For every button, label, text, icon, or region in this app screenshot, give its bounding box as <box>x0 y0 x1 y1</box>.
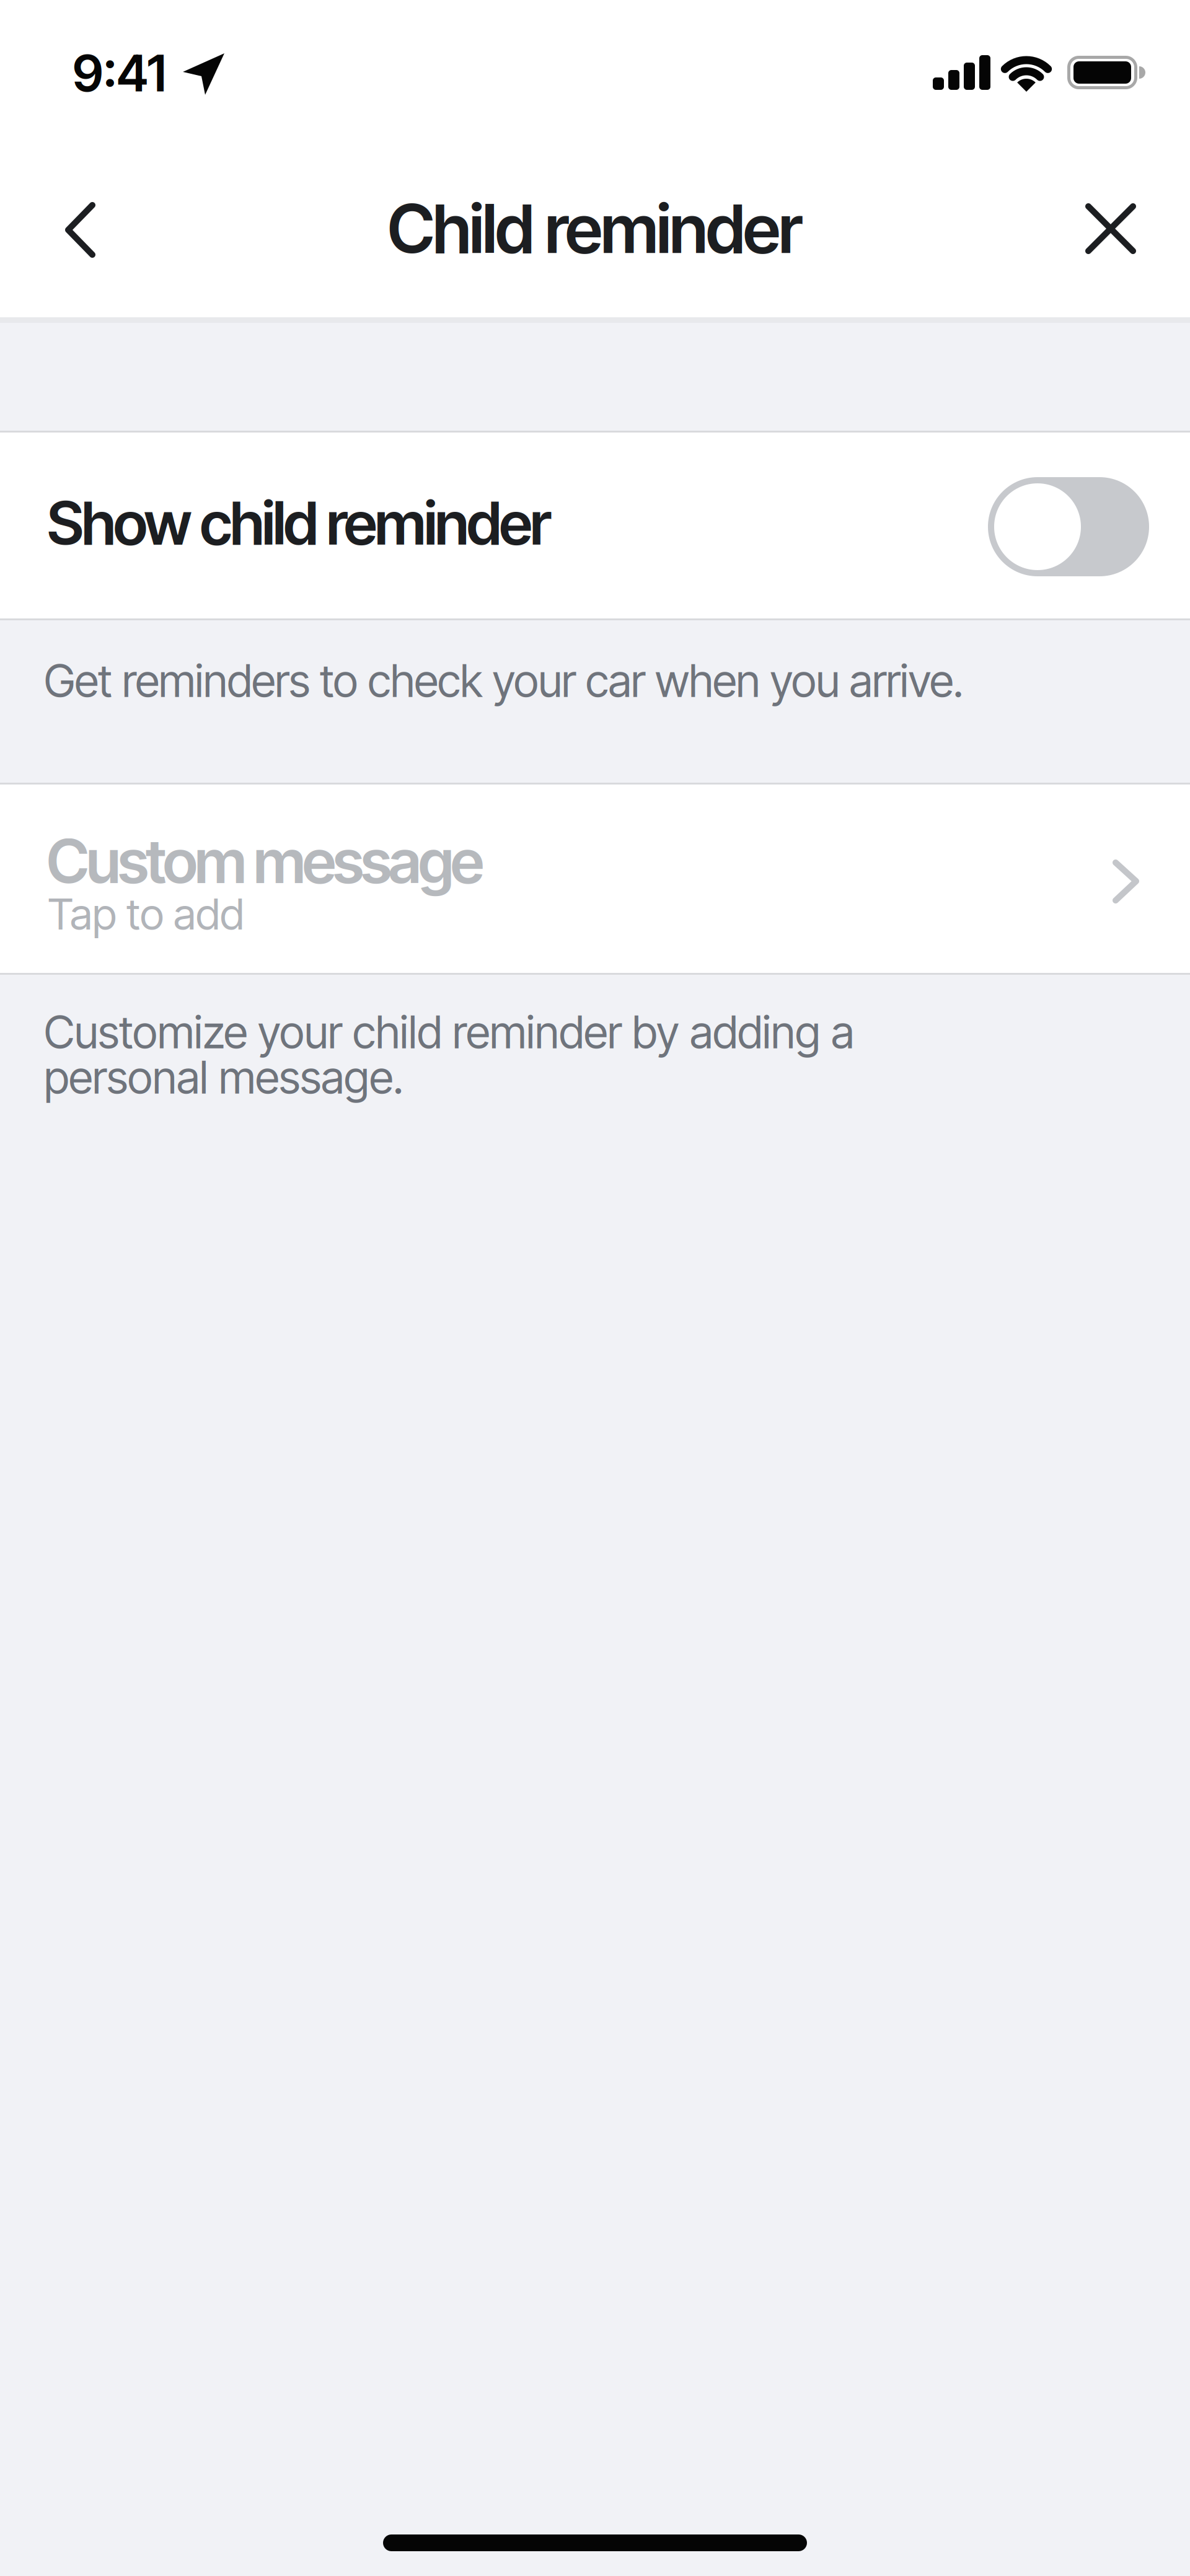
button[interactable]: Custom message <box>0 785 1190 973</box>
staticText: Get reminders to check your car when you… <box>44 654 963 707</box>
staticText: personal message. <box>44 1051 403 1104</box>
staticText: 9:41 <box>73 43 166 103</box>
button[interactable]: Show child reminder <box>988 477 1149 576</box>
staticText: Child reminder <box>387 189 803 268</box>
staticText: Custom message <box>46 825 484 897</box>
button[interactable]: Back <box>42 192 117 268</box>
button[interactable]: Close <box>1073 191 1148 266</box>
staticText: Tap to add <box>48 889 244 939</box>
staticText: Show child reminder <box>47 488 552 558</box>
staticText: Customize your child reminder by adding … <box>44 1006 854 1058</box>
